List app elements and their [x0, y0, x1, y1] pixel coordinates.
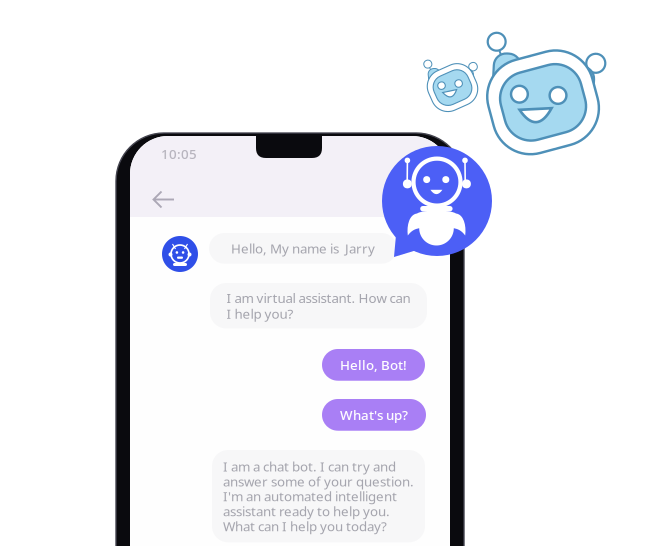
staticText: 10:05 [161, 145, 197, 163]
staticText: Hello, My name is Jarry [231, 239, 375, 257]
button[interactable]: Back [152, 190, 175, 209]
staticText: What's up? [340, 406, 408, 424]
staticText: I am a chat bot. I can try and answer so… [223, 457, 414, 535]
staticText: Hello, Bot! [340, 356, 407, 374]
staticText: I am virtual assistant. How can I help y… [226, 289, 410, 322]
